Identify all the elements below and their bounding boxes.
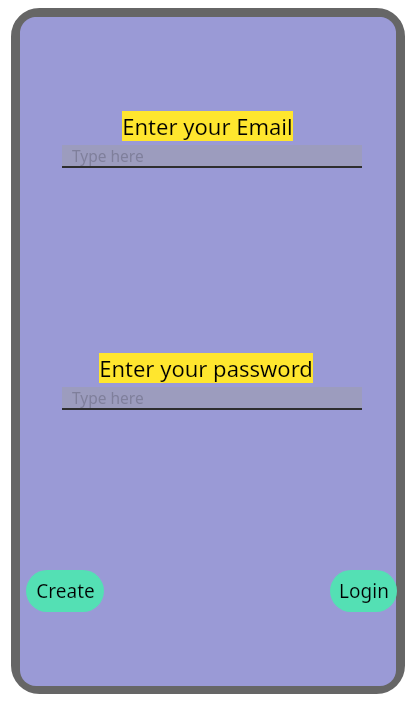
button[interactable]: Email input field bbox=[62, 145, 362, 168]
staticText: Create bbox=[36, 578, 95, 604]
staticText: Enter your password bbox=[99, 353, 313, 383]
staticText: Type here bbox=[72, 145, 144, 166]
button[interactable]: Password input field bbox=[62, 387, 362, 410]
staticText: Type here bbox=[72, 387, 144, 408]
staticText: Login bbox=[339, 578, 389, 604]
staticText: Enter your Email bbox=[122, 111, 293, 141]
button[interactable]: Login bbox=[330, 570, 397, 612]
button[interactable]: Create bbox=[26, 570, 104, 612]
